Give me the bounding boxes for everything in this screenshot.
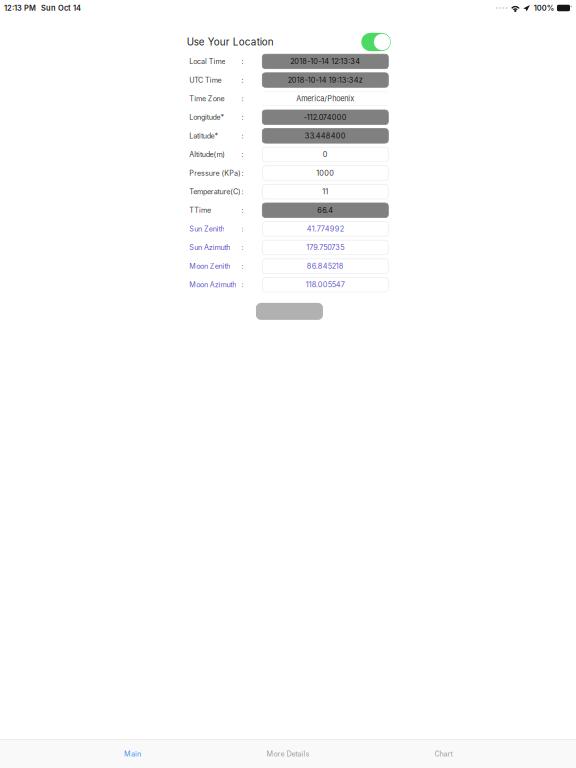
staticText: : xyxy=(241,169,243,177)
staticText: Chart xyxy=(434,750,452,758)
staticText: 0 xyxy=(323,150,328,159)
staticText: : xyxy=(241,76,243,84)
staticText: Sun Oct 14 xyxy=(41,3,81,12)
staticText: Sun Azimuth xyxy=(189,243,230,252)
staticText: Altitude(m) xyxy=(189,150,225,159)
staticText: 66.4 xyxy=(317,206,333,215)
staticText: : xyxy=(241,206,243,215)
button[interactable]: Use Your Location xyxy=(361,33,391,51)
staticText: 11 xyxy=(322,187,328,196)
staticText: : xyxy=(241,224,243,233)
staticText: : xyxy=(241,150,243,159)
staticText: 41.774992 xyxy=(307,224,344,233)
staticText: 2018-10-14 12:13:34 xyxy=(290,57,360,66)
staticText: -112.074000 xyxy=(304,113,347,122)
staticText: : xyxy=(241,94,243,103)
staticText: : xyxy=(241,57,243,66)
staticText: America/Phoenix xyxy=(296,94,354,103)
staticText: 12:13 PM xyxy=(4,3,36,12)
staticText: Local Time xyxy=(189,57,225,66)
staticText: Sun Zenith xyxy=(189,224,224,233)
staticText: Main xyxy=(124,750,141,758)
button[interactable]: Main xyxy=(55,740,210,768)
staticText: More Details xyxy=(266,750,309,758)
button[interactable]: More Details xyxy=(210,740,366,768)
staticText: Temperature(C) xyxy=(189,187,241,196)
staticText: Use Your Location xyxy=(187,36,274,48)
staticText: 86.845218 xyxy=(307,262,344,270)
staticText: Pressure (KPa) xyxy=(189,169,241,177)
staticText: Moon Azimuth xyxy=(189,280,236,289)
staticText: UTC Time xyxy=(189,76,222,84)
staticText: Latitude* xyxy=(189,131,218,140)
staticText: : xyxy=(241,131,243,140)
button[interactable]: Chart xyxy=(366,740,521,768)
staticText: Time Zone xyxy=(189,94,224,103)
staticText: : xyxy=(241,113,243,122)
staticText: 118.005547 xyxy=(306,280,345,289)
staticText: : xyxy=(241,262,243,270)
staticText: Moon Zenith xyxy=(189,262,230,270)
staticText: 100% xyxy=(534,3,554,12)
staticText: : xyxy=(241,243,243,252)
staticText: 1000 xyxy=(316,169,334,177)
staticText: 33.448400 xyxy=(305,131,346,140)
staticText: 179.750735 xyxy=(306,243,344,252)
staticText: : xyxy=(241,187,243,196)
staticText: TTime xyxy=(189,206,211,215)
staticText: Longitude* xyxy=(189,113,224,122)
staticText: : xyxy=(241,280,243,289)
button[interactable]: Calculate xyxy=(256,303,323,320)
staticText: 2018-10-14 19:13:34z xyxy=(288,76,363,84)
